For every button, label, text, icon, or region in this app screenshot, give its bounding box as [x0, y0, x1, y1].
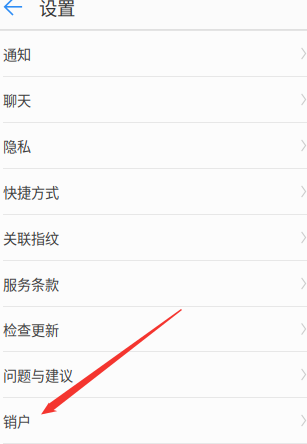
button[interactable]: Back	[0, 0, 39, 16]
button[interactable]: 聊天	[0, 77, 307, 123]
staticText: 聊天	[3, 89, 31, 110]
staticText: 销户	[3, 410, 31, 431]
button[interactable]: 检查更新	[0, 307, 307, 352]
staticText: 关联指纹	[3, 227, 59, 248]
button[interactable]: 隐私	[0, 123, 307, 169]
button[interactable]: 快捷方式	[0, 169, 307, 215]
button[interactable]: 通知	[0, 31, 307, 77]
staticText: 检查更新	[3, 319, 59, 339]
staticText: 设置	[39, 0, 75, 21]
button[interactable]: 服务条款	[0, 261, 307, 307]
button[interactable]: 问题与建议	[0, 352, 307, 398]
button[interactable]: 销户	[0, 398, 307, 444]
staticText: 隐私	[3, 135, 31, 156]
staticText: 通知	[3, 43, 31, 64]
button[interactable]: 关联指纹	[0, 215, 307, 261]
staticText: 问题与建议	[3, 364, 73, 385]
staticText: 服务条款	[3, 273, 59, 294]
staticText: 快捷方式	[3, 181, 59, 202]
